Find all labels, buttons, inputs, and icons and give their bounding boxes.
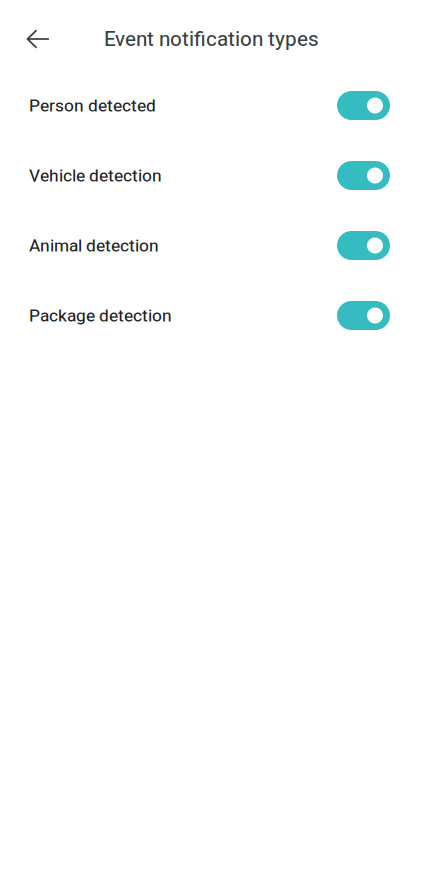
button[interactable]: Person detected (0, 85, 426, 126)
button[interactable]: Animal detection (0, 225, 426, 266)
staticText: Person detected (29, 95, 156, 116)
staticText: Package detection (29, 305, 172, 326)
staticText: Animal detection (29, 235, 159, 256)
button[interactable]: Vehicle detection (0, 155, 426, 196)
button[interactable]: Back (16, 17, 60, 61)
staticText: Event notification types (104, 27, 319, 51)
staticText: Vehicle detection (29, 165, 162, 186)
button[interactable]: Package detection (0, 295, 426, 336)
